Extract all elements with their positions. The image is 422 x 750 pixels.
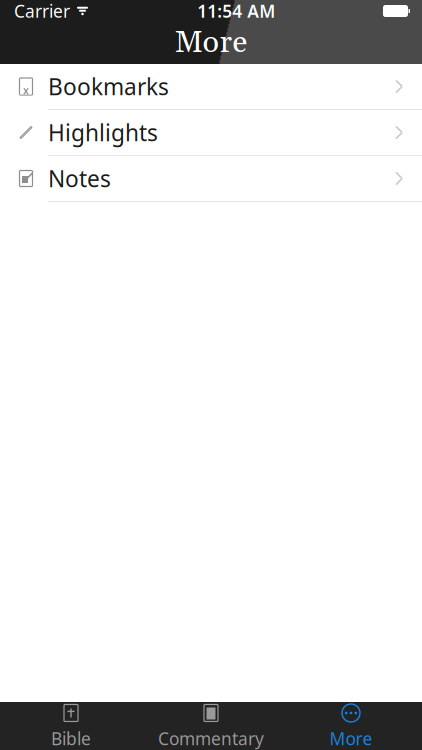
button[interactable]: Bookmarks [0,64,422,109]
staticText: More [174,23,247,62]
button[interactable]: More [281,702,421,750]
staticText: Highlights [48,117,158,147]
staticText: 11:54 AM [197,0,275,22]
staticText: Notes [48,163,111,193]
button[interactable]: Bible [1,702,141,750]
staticText: Carrier [14,0,70,22]
staticText: More [329,727,372,750]
staticText: Commentary [158,727,264,750]
staticText: Bookmarks [48,71,169,101]
staticText: Bible [51,727,91,750]
button[interactable]: Commentary [141,702,281,750]
button[interactable]: Notes [0,156,422,201]
button[interactable]: Highlights [0,110,422,155]
